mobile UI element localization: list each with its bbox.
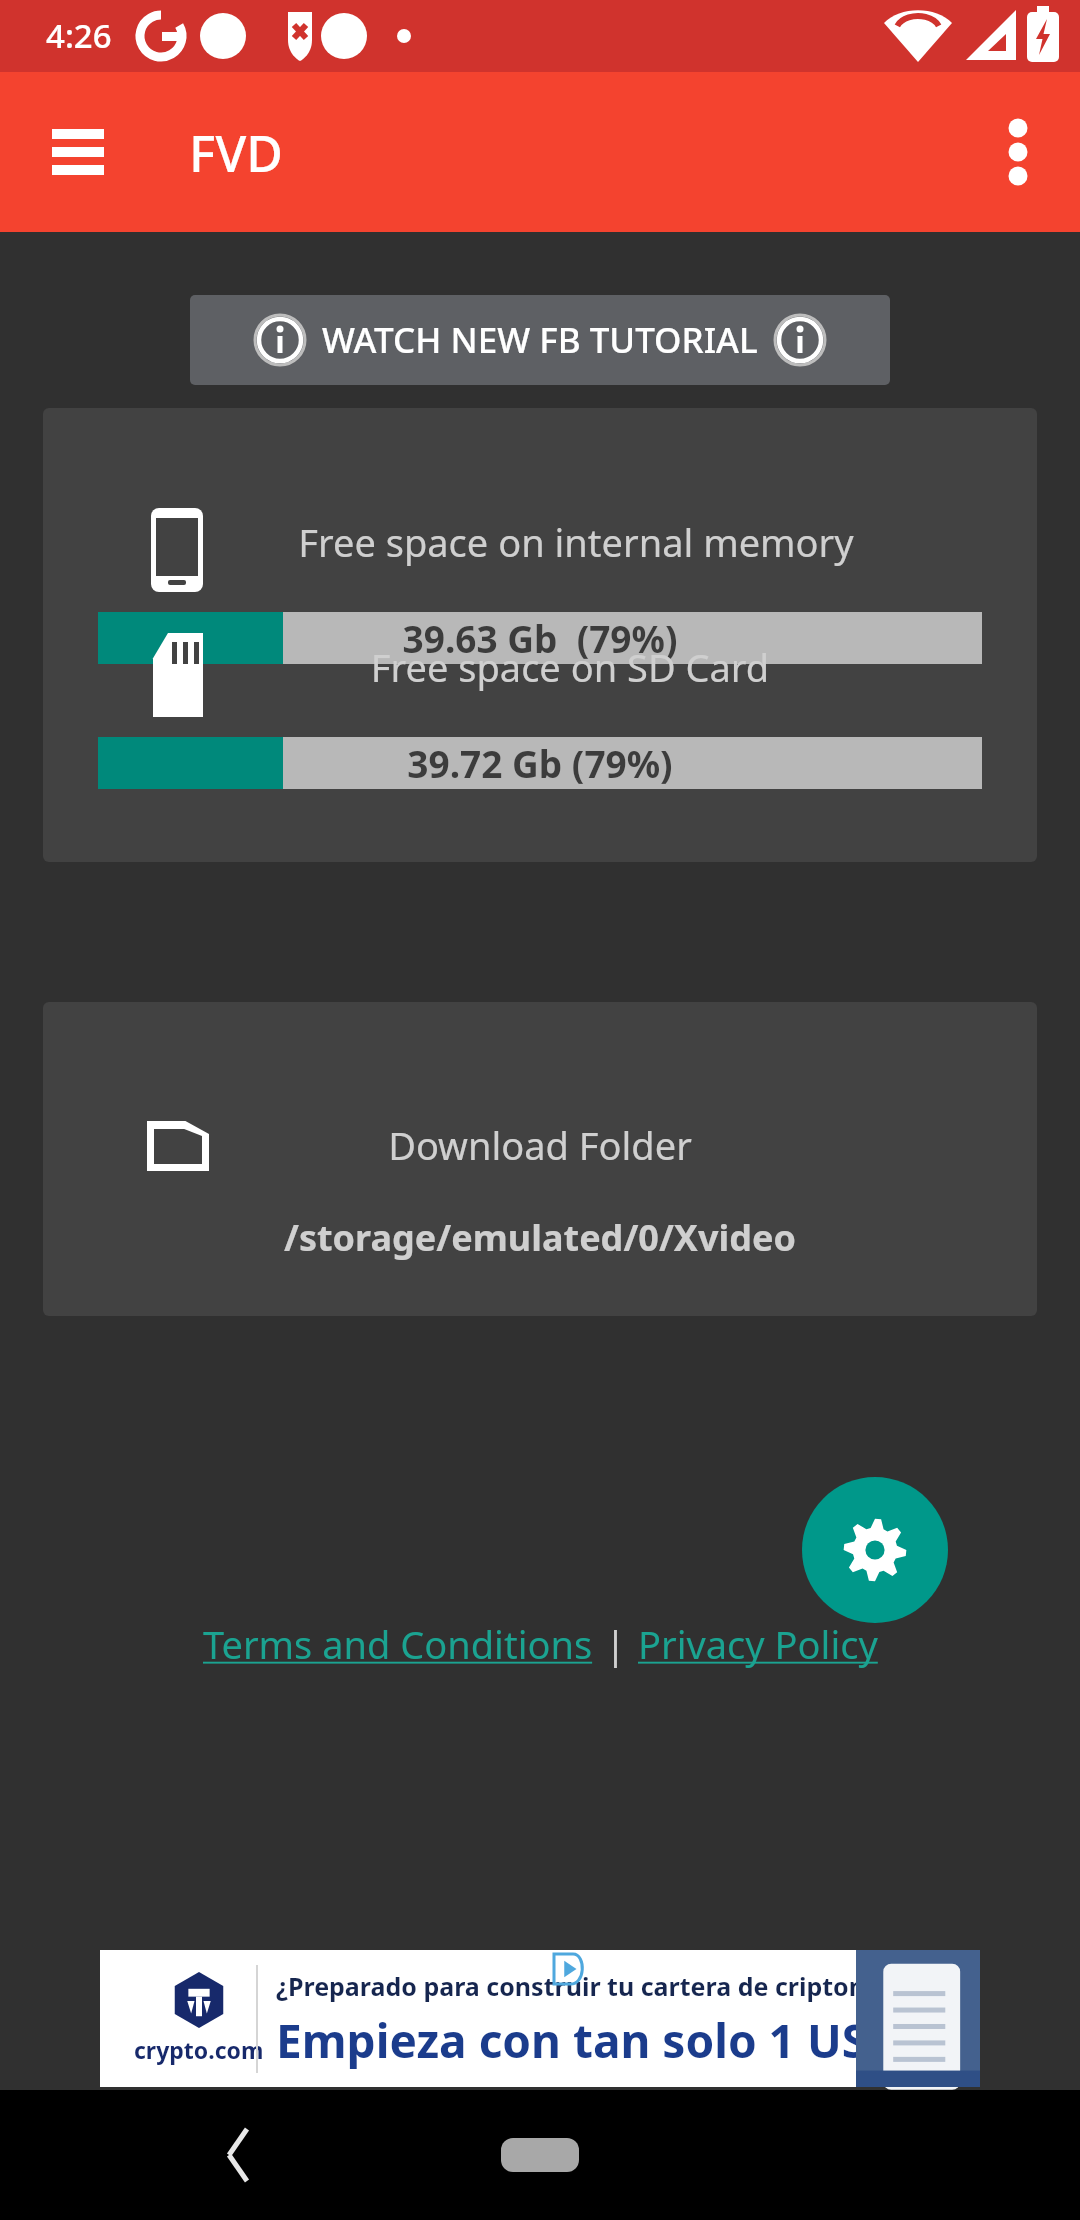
button[interactable]: Terms and Conditions	[201, 1618, 595, 1670]
staticText: Privacy Policy	[638, 1618, 878, 1670]
button[interactable]: Home	[501, 2138, 579, 2172]
staticText: 39.63 Gb (79%)	[98, 613, 982, 663]
staticText: Download Folder	[43, 1119, 1037, 1171]
button[interactable]: Settings	[802, 1477, 948, 1623]
button[interactable]: Privacy Policy	[636, 1618, 880, 1670]
staticText: /storage/emulated/0/Xvideo	[43, 1213, 1037, 1262]
button[interactable]: More options	[970, 104, 1066, 200]
staticText: ¿Preparado para construir tu cartera de …	[276, 1969, 976, 2003]
button[interactable]: 39.63 Gb (79%)	[98, 612, 982, 664]
staticText: crypto.com	[134, 2034, 264, 2065]
staticText: 39.72 Gb (79%)	[98, 738, 982, 788]
button[interactable]: 39.72 Gb (79%)	[98, 737, 982, 789]
staticText: 4:26	[46, 13, 112, 58]
button[interactable]: crypto.com	[100, 1950, 980, 2087]
button[interactable]: Back	[190, 2107, 286, 2203]
staticText: |	[595, 1618, 636, 1670]
staticText: Terms and Conditions	[203, 1618, 593, 1670]
staticText: WATCH NEW FB TUTORIAL	[322, 316, 758, 364]
staticText: Free space on internal memory	[79, 516, 1037, 568]
staticText: Empieza con tan solo 1 USD	[276, 2009, 901, 2072]
button[interactable]: WATCH NEW FB TUTORIAL	[190, 295, 890, 385]
staticText: FVD	[189, 119, 283, 187]
button[interactable]: Open navigation menu	[26, 100, 130, 204]
staticText: Free space on SD Card	[73, 641, 1037, 693]
